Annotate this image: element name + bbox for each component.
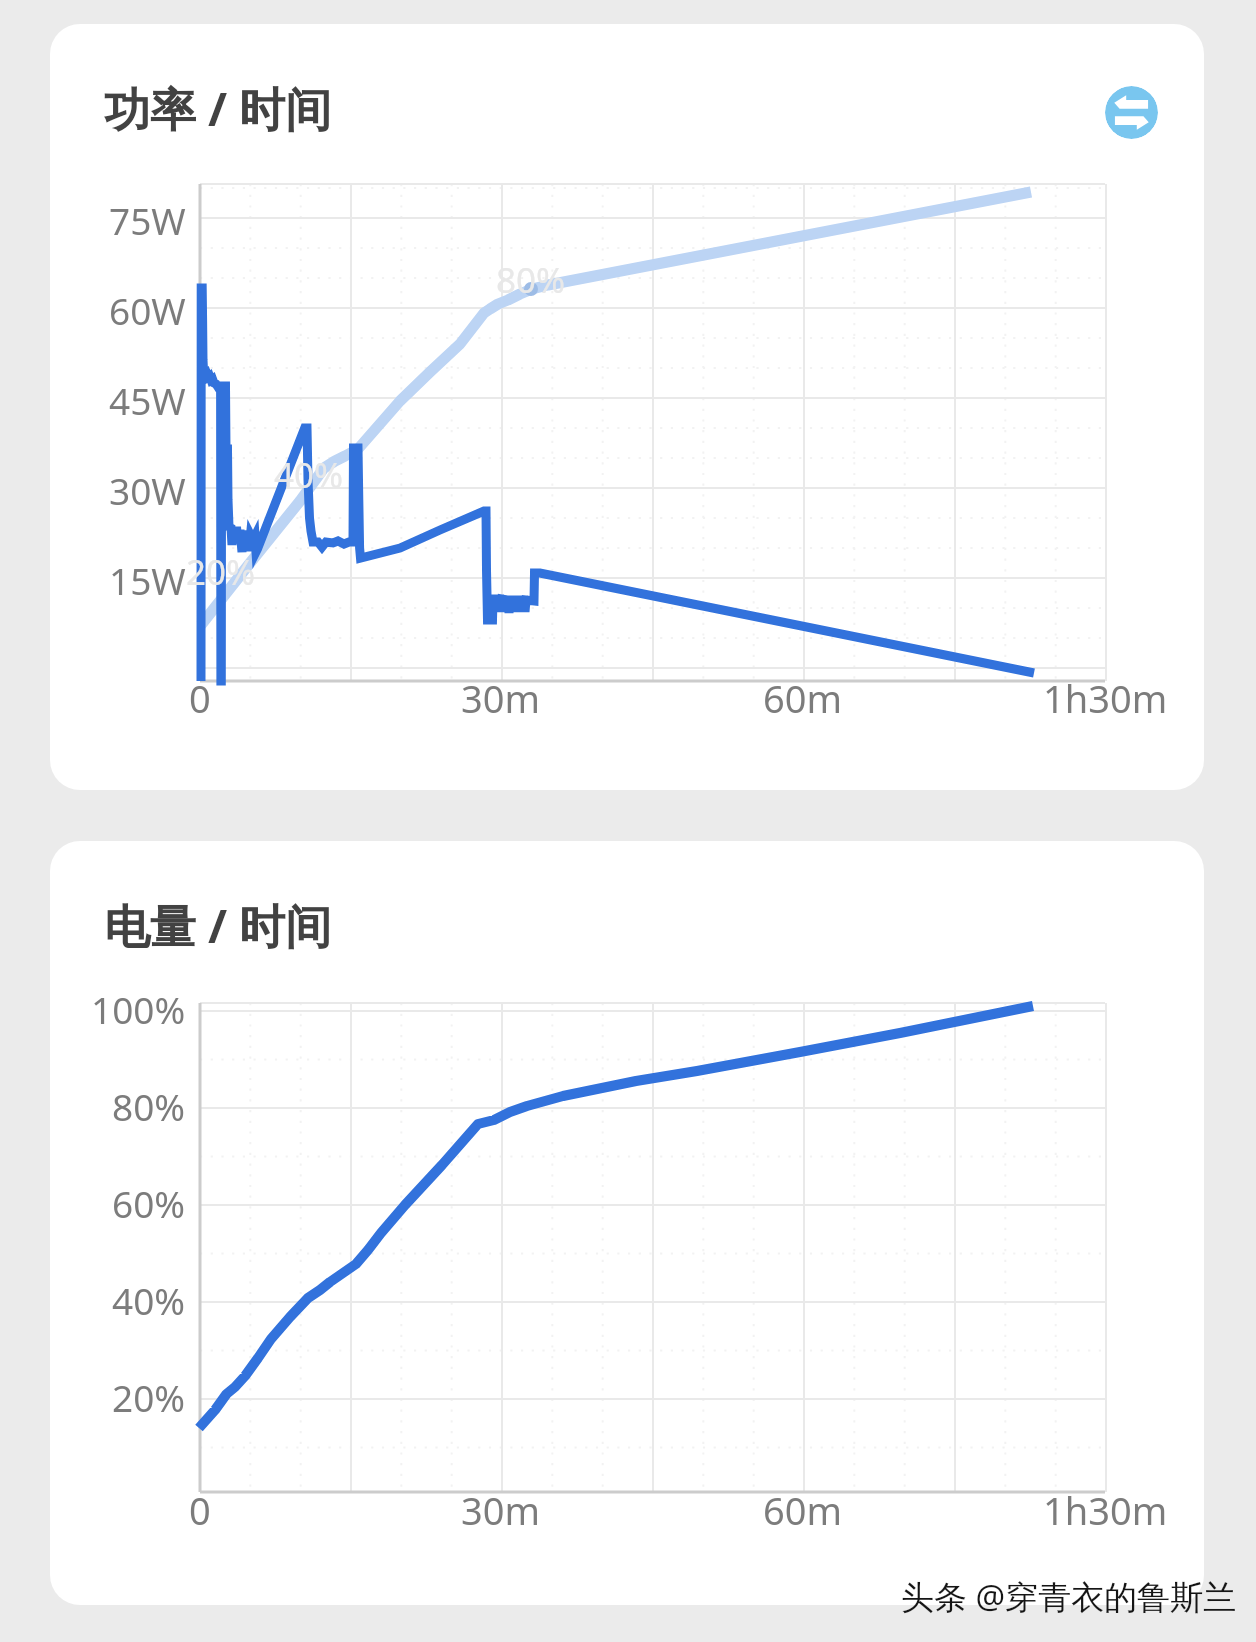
staticText: 100% [91,984,186,1034]
staticText: 15W [109,555,186,605]
staticText: 60% [112,1178,186,1228]
staticText: 30m [461,1484,541,1536]
staticText: 0 [189,672,211,724]
staticText: 1h30m [1043,1484,1168,1536]
staticText: 头条 @穿青衣的鲁斯兰 [901,1574,1237,1619]
staticText: 20% [112,1372,186,1422]
staticText: 40% [112,1275,186,1325]
staticText: 20% [186,548,256,596]
staticText: 75W [109,195,186,245]
staticText: 80% [496,256,566,304]
staticText: 30m [461,672,541,724]
staticText: 40% [274,451,344,499]
staticText: 80% [112,1081,186,1131]
staticText: 30W [109,465,186,515]
staticText: 电量 / 时间 [104,894,332,957]
staticText: 60m [763,1484,843,1536]
staticText: 功率 / 时间 [104,77,332,140]
staticText: 0 [189,1484,211,1536]
staticText: 60W [109,285,186,335]
button[interactable]: 功率 / 时间 [50,24,1204,790]
button[interactable]: 电量 / 时间 [50,841,1204,1605]
button[interactable]: Swap axes [1105,86,1158,139]
staticText: 1h30m [1043,672,1168,724]
staticText: 60m [763,672,843,724]
staticText: 45W [109,375,186,425]
